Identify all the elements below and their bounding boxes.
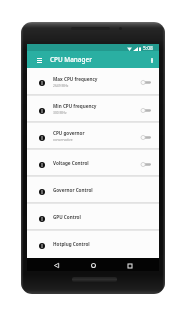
button[interactable]: More options <box>145 51 159 68</box>
staticText: Min CPU frequency <box>53 103 97 109</box>
button[interactable]: Toggle CPU governor <box>138 129 154 145</box>
staticText: CPU governor <box>53 130 85 136</box>
button[interactable]: Toggle Min CPU frequency <box>138 102 154 118</box>
staticText: CPU Manager <box>50 55 92 64</box>
staticText: GPU Control <box>53 214 81 220</box>
button[interactable]: Recent apps <box>123 258 136 271</box>
staticText: conservative <box>53 137 73 141</box>
button[interactable]: GPU Control <box>27 204 159 231</box>
staticText: Hotplug Control <box>53 241 90 247</box>
button[interactable]: Back <box>50 258 63 271</box>
staticText: Max CPU frequency <box>53 76 98 82</box>
button[interactable]: Home <box>87 258 100 271</box>
button[interactable]: Min CPU frequency <box>27 96 159 123</box>
button[interactable]: Toggle Voltage Control <box>138 156 154 172</box>
staticText: 2649 MHz <box>53 83 69 87</box>
staticText: Governor Control <box>53 187 93 193</box>
staticText: 300 MHz <box>53 110 67 114</box>
button[interactable]: Max CPU frequency <box>27 68 159 96</box>
button[interactable]: Governor Control <box>27 177 159 204</box>
button[interactable]: Hotplug Control <box>27 231 159 258</box>
staticText: 5:08 <box>143 45 153 52</box>
button[interactable]: Voltage Control <box>27 150 159 177</box>
button[interactable]: Toggle Max CPU frequency <box>138 74 154 90</box>
button[interactable]: CPU governor <box>27 123 159 150</box>
staticText: Voltage Control <box>53 160 89 166</box>
button[interactable]: Navigation menu <box>31 51 47 68</box>
